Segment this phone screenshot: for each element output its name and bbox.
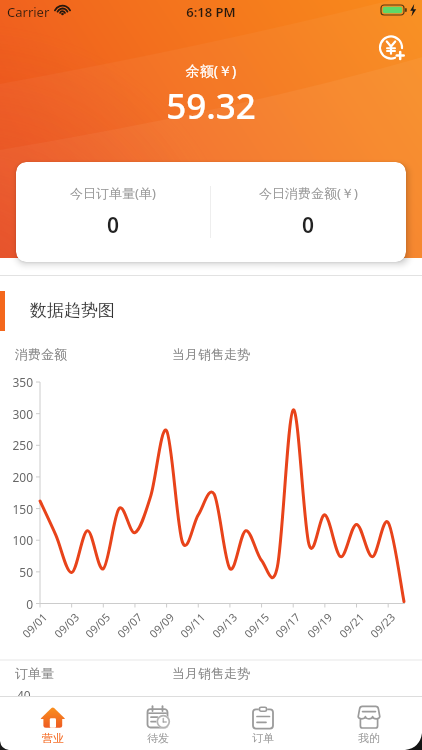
staticText: 0 — [107, 211, 120, 240]
staticText: 待发 — [147, 731, 169, 745]
staticText: 200 — [4, 469, 33, 485]
button[interactable]: 待发 — [105, 697, 210, 750]
staticText: 当月销售走势 — [172, 346, 250, 362]
staticText: 09/23 — [367, 609, 398, 640]
staticText: 今日消费金额(￥) — [259, 184, 358, 202]
staticText: 150 — [4, 501, 33, 517]
button[interactable]: 今日订单量(单) — [16, 162, 210, 262]
staticText: 当月销售走势 — [172, 665, 250, 681]
staticText: 09/11 — [177, 609, 208, 640]
button[interactable]: 今日消费金额(￥) — [211, 162, 406, 262]
staticText: 09/13 — [209, 609, 240, 640]
staticText: 09/09 — [146, 609, 177, 640]
staticText: 数据趋势图 — [30, 300, 115, 321]
staticText: 09/01 — [19, 609, 50, 640]
staticText: 09/17 — [272, 609, 303, 640]
staticText: 消费金额 — [15, 346, 67, 362]
staticText: 09/15 — [241, 609, 272, 640]
staticText: 今日订单量(单) — [70, 184, 156, 202]
staticText: 我的 — [358, 731, 380, 745]
staticText: 59.32 — [0, 82, 422, 130]
staticText: 300 — [4, 406, 33, 422]
staticText: 100 — [4, 532, 33, 548]
staticText: Carrier — [7, 3, 50, 21]
staticText: 订单量 — [15, 665, 54, 681]
staticText: 09/05 — [82, 609, 113, 640]
staticText: 0 — [302, 211, 315, 240]
staticText: 40 — [17, 687, 31, 703]
button[interactable]: 营业 — [0, 697, 105, 750]
button[interactable]: 订单 — [210, 697, 316, 750]
staticText: 0 — [4, 596, 33, 612]
staticText: 09/19 — [304, 609, 335, 640]
staticText: 250 — [4, 437, 33, 453]
staticText: 09/03 — [51, 609, 82, 640]
staticText: 09/07 — [114, 609, 145, 640]
staticText: 订单 — [252, 731, 274, 745]
button[interactable] — [377, 33, 406, 62]
staticText: 350 — [4, 374, 33, 390]
staticText: 营业 — [42, 731, 64, 745]
button[interactable]: 我的 — [316, 697, 422, 750]
staticText: 6:18 PM — [0, 3, 422, 21]
staticText: 余额(￥) — [0, 61, 422, 80]
staticText: 50 — [4, 564, 33, 580]
staticText: 09/21 — [336, 609, 367, 640]
